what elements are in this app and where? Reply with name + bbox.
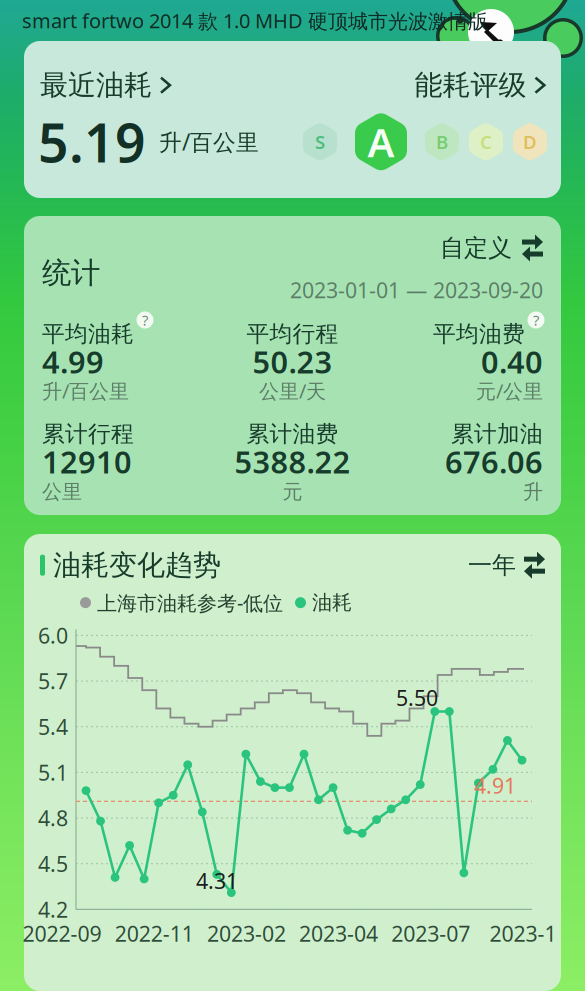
staticText: 升/百公里	[42, 377, 129, 404]
staticText: 一年	[468, 550, 516, 580]
staticText: smart fortwo 2014 款 1.0 MHD 硬顶城市光波激情版	[22, 7, 488, 34]
staticText: 4.31	[196, 867, 238, 895]
staticText: 12910	[42, 441, 132, 482]
staticText: 油耗变化趋势	[45, 548, 221, 582]
button[interactable]: 自定义	[440, 226, 543, 270]
staticText: 5388.22	[234, 441, 350, 482]
staticText: 0.40	[481, 341, 543, 382]
staticText: 2023-07	[391, 919, 470, 948]
staticText: 能耗评级	[414, 68, 526, 102]
staticText: 累计行程	[42, 420, 134, 448]
staticText: 升	[523, 479, 543, 504]
staticText: 2023-04	[299, 919, 378, 948]
staticText: B	[436, 129, 448, 154]
staticText: 2023-02	[207, 919, 286, 948]
staticText: 5.7	[38, 667, 68, 695]
button[interactable]: 能耗评级	[414, 68, 545, 102]
staticText: 平均行程	[246, 320, 338, 348]
staticText: A	[367, 115, 394, 168]
staticText: 公里/天	[259, 377, 326, 404]
staticText: 4.99	[42, 341, 104, 382]
staticText: S	[315, 129, 325, 154]
staticText: 2023-1	[489, 919, 556, 948]
staticText: 4.5	[38, 850, 68, 878]
staticText: ?	[533, 310, 539, 330]
staticText: 5.4	[38, 713, 68, 741]
staticText: 2022-11	[115, 919, 194, 948]
staticText: 平均油费	[433, 320, 525, 348]
staticText: 自定义	[440, 233, 512, 263]
staticText: ?	[142, 310, 148, 330]
staticText: 元/公里	[476, 377, 543, 404]
staticText: 公里	[42, 479, 82, 504]
staticText: 2023-01-01 — 2023-09-20	[290, 276, 543, 304]
staticText: 676.06	[445, 441, 543, 482]
staticText: 累计加油	[451, 420, 543, 448]
staticText: 6.0	[38, 621, 68, 649]
staticText: 升/百公里	[152, 127, 259, 157]
staticText: 统计	[42, 255, 100, 291]
staticText: 4.2	[38, 895, 68, 923]
staticText: 4.91	[474, 771, 516, 800]
staticText: 5.1	[38, 758, 68, 786]
staticText: 最近油耗	[40, 68, 152, 102]
staticText: 累计油费	[246, 420, 338, 448]
staticText: 2022-09	[23, 919, 102, 948]
staticText: 平均油耗	[42, 320, 134, 348]
staticText: D	[523, 129, 537, 154]
staticText: C	[480, 129, 492, 154]
button[interactable]: 最近油耗	[40, 68, 170, 102]
staticText: 元	[282, 479, 302, 504]
button[interactable]: 一年	[468, 550, 545, 580]
staticText: 5.19	[38, 106, 146, 177]
staticText: 油耗	[312, 590, 352, 615]
staticText: 50.23	[252, 341, 332, 382]
staticText: 4.8	[38, 804, 68, 832]
staticText: 上海市油耗参考-低位	[97, 589, 283, 616]
staticText: 5.50	[396, 683, 438, 712]
